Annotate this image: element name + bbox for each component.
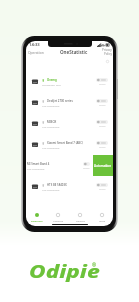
staticText: MI Smart Band 4: [27, 162, 50, 166]
button[interactable]: Network: [47, 213, 69, 224]
staticText: Device: [99, 83, 106, 86]
button[interactable]: Connect: [83, 162, 90, 166]
staticText: Odipie: [29, 260, 101, 283]
staticText: Bluetooth: [31, 219, 43, 222]
button[interactable]: MI Smart Band 4: [26, 155, 93, 176]
staticText: HTS BE 58403X: [47, 183, 67, 187]
staticText: Not connected: [42, 125, 60, 128]
button[interactable]: Devices: [69, 213, 91, 224]
staticText: Device: [99, 104, 106, 107]
button[interactable]: HTS BE 58403X: [26, 176, 113, 197]
staticText: Xiaomi Smart Band 7 (ABC): [47, 141, 83, 145]
staticText: Connected 82%: [42, 83, 61, 86]
staticText: Privacy: [102, 48, 112, 52]
staticText: Not connected: [42, 104, 60, 107]
staticText: Policy: [104, 52, 112, 56]
staticText: MIBOX: [47, 120, 57, 124]
button[interactable]: Xiaomi Smart Band 7 (ABC): [26, 134, 113, 155]
staticText: Operation: [28, 50, 44, 54]
staticText: Ovemg: [47, 78, 57, 82]
staticText: Not connected: [42, 188, 60, 191]
button[interactable]: Privacy: [101, 47, 113, 57]
button[interactable]: DeskJet 2700 series: [26, 92, 113, 113]
staticText: DeskJet 2700 series: [47, 99, 73, 103]
staticText: OneStatistic: [60, 49, 88, 55]
staticText: More: [99, 219, 106, 222]
button[interactable]: Connect: [96, 99, 108, 103]
button[interactable]: Automation: [93, 155, 113, 176]
button[interactable]: Search: [104, 58, 110, 64]
button[interactable]: Connect: [96, 78, 108, 82]
staticText: Device: [99, 146, 106, 149]
staticText: Not connected: [27, 167, 45, 170]
button[interactable]: Connect: [96, 120, 108, 124]
button[interactable]: MIBOX: [26, 113, 113, 134]
staticText: Not connected: [42, 146, 60, 149]
staticText: 14:33: [29, 42, 40, 47]
staticText: ®: [92, 262, 97, 269]
button[interactable]: Connect: [96, 141, 108, 145]
staticText: Device: [83, 167, 90, 170]
button[interactable]: Operation: [26, 48, 46, 56]
button[interactable]: Connect: [96, 183, 108, 187]
staticText: Automation: [94, 164, 112, 168]
staticText: Network: [53, 219, 64, 222]
staticText: Device: [99, 188, 106, 191]
button[interactable]: More: [91, 213, 113, 224]
staticText: Devices: [76, 219, 85, 222]
button[interactable]: Ovemg: [26, 71, 113, 92]
button[interactable]: Bluetooth: [26, 213, 47, 224]
staticText: Device: [99, 125, 106, 128]
